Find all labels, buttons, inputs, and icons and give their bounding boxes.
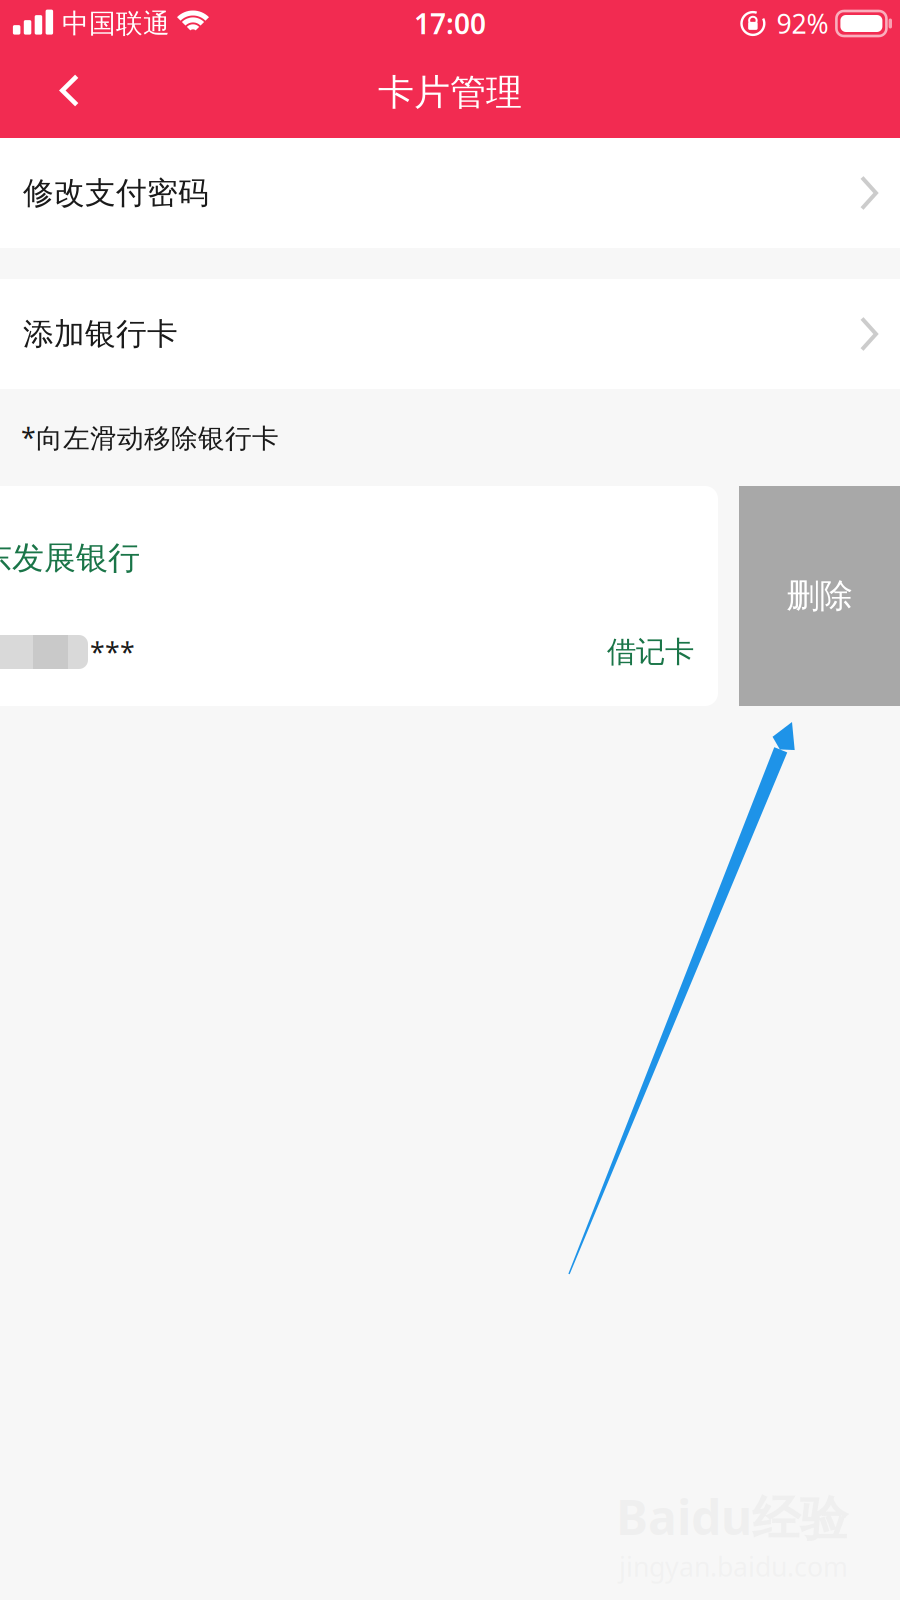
- button[interactable]: 修改支付密码: [0, 138, 900, 248]
- staticText: 上海浦东发展银行: [0, 538, 140, 578]
- staticText: Baidu经验: [616, 1485, 848, 1549]
- staticText: *向左滑动移除银行卡: [21, 420, 279, 455]
- button[interactable]: 返回: [0, 61, 109, 124]
- staticText: ***: [90, 634, 135, 670]
- button[interactable]: 添加银行卡: [0, 279, 900, 389]
- staticText: 卡片管理: [378, 70, 522, 115]
- button[interactable]: 删除: [739, 486, 900, 706]
- staticText: 修改支付密码: [23, 174, 209, 212]
- staticText: 借记卡: [607, 634, 694, 670]
- staticText: 删除: [786, 575, 852, 616]
- staticText: 添加银行卡: [23, 315, 178, 353]
- staticText: 中国联通: [62, 7, 170, 40]
- staticText: 17:00: [414, 5, 486, 42]
- staticText: 92%: [776, 6, 828, 41]
